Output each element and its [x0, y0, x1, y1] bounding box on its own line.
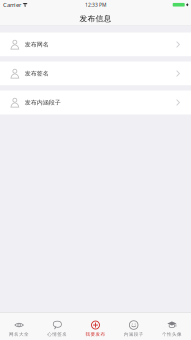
staticText: Carrier — [3, 1, 21, 9]
button[interactable]: 个性头像 — [153, 313, 191, 340]
staticText: 网名大全 — [9, 331, 29, 337]
button[interactable]: 发布签名 — [0, 61, 191, 85]
staticText: 我要发布 — [85, 331, 105, 337]
button[interactable]: 我要发布 — [76, 313, 115, 340]
button[interactable]: 心情签名 — [38, 313, 76, 340]
staticText: 发布内涵段子 — [25, 99, 61, 106]
staticText: 心情签名 — [47, 331, 67, 337]
staticText: 发布网名 — [25, 41, 49, 48]
staticText: 发布签名 — [25, 70, 49, 77]
button[interactable]: 发布网名 — [0, 32, 191, 56]
staticText: 发布信息 — [79, 14, 111, 24]
staticText: 内涵段子 — [124, 331, 144, 337]
staticText: 12:33 PM — [85, 1, 106, 8]
button[interactable]: 网名大全 — [0, 313, 38, 340]
button[interactable]: 内涵段子 — [115, 313, 153, 340]
button[interactable]: 发布内涵段子 — [0, 90, 191, 114]
staticText: 个性头像 — [162, 331, 182, 337]
